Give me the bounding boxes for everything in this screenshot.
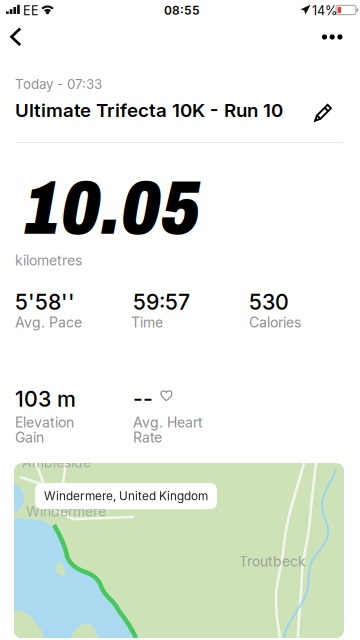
button[interactable]: More options	[312, 22, 356, 66]
staticText: 10.05	[25, 167, 200, 250]
staticText: Gain	[15, 429, 44, 446]
staticText: 5'58''	[15, 289, 75, 315]
staticText: kilometres	[15, 252, 82, 269]
staticText: Windermere, United Kingdom	[44, 489, 208, 503]
button[interactable]: Edit activity name	[304, 94, 342, 132]
staticText: Today - 07:33	[15, 76, 102, 92]
staticText: 530	[249, 289, 289, 315]
staticText: Time	[131, 314, 163, 331]
staticText: --	[133, 386, 153, 412]
staticText: 08:55	[164, 3, 200, 17]
staticText: 14%	[312, 3, 337, 18]
staticText: 103 m	[15, 386, 76, 412]
staticText: Rate	[133, 429, 162, 446]
staticText: Calories	[249, 314, 301, 331]
staticText: Windermere	[26, 503, 106, 520]
staticText: Avg. Pace	[15, 314, 82, 331]
staticText: Avg. Heart	[133, 414, 203, 431]
button[interactable]: Back	[0, 22, 44, 66]
staticText: Elevation	[15, 414, 74, 431]
staticText: EE	[23, 3, 39, 18]
staticText: 59:57	[133, 289, 190, 315]
staticText: Ambleside	[22, 454, 91, 471]
staticText: Troutbeck	[239, 553, 306, 570]
staticText: Ultimate Trifecta 10K - Run 10	[15, 99, 283, 122]
